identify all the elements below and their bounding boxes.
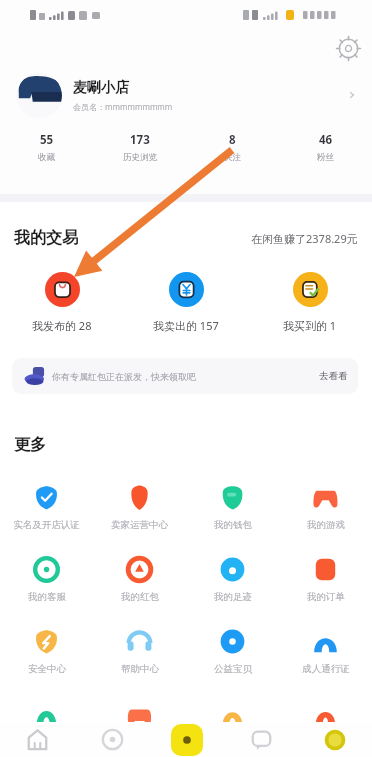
- button[interactable]: 我的评价: [186, 700, 279, 747]
- button[interactable]: 我的卡券: [93, 700, 186, 747]
- staticText: 8: [229, 132, 236, 148]
- staticText: 去看看: [319, 370, 348, 382]
- button[interactable]: 我的订单: [279, 556, 372, 603]
- button[interactable]: 我的红包: [93, 556, 186, 603]
- button[interactable]: 安全中心: [0, 628, 93, 675]
- button[interactable]: 成人通行证: [279, 628, 372, 675]
- button[interactable]: Fish: [75, 722, 150, 757]
- staticText: 历史浏览: [123, 152, 157, 163]
- staticText: 我的客服: [307, 735, 345, 747]
- staticText: 实名及开店认证: [13, 519, 80, 531]
- button[interactable]: 帮助中心: [93, 628, 186, 675]
- staticText: 我的交易: [14, 228, 78, 248]
- staticText: 公益宝贝: [214, 663, 252, 675]
- staticText: 麦唰小店: [73, 79, 129, 97]
- staticText: 我的地址: [28, 735, 66, 747]
- staticText: 我的订单: [307, 591, 345, 603]
- button[interactable]: Messages: [224, 722, 298, 757]
- staticText: 在闲鱼赚了2378.29元: [251, 231, 358, 246]
- staticText: 收藏: [38, 152, 55, 163]
- staticText: 会员名：mmmmmmmmm: [73, 101, 173, 112]
- button[interactable]: 你有专属红包正在派发，快来领取吧: [12, 358, 358, 394]
- button[interactable]: 我的客服: [279, 700, 372, 747]
- staticText: 安全中心: [28, 663, 66, 675]
- staticText: 我买到的 1: [283, 318, 337, 333]
- button[interactable]: 实名及开店认证: [0, 484, 93, 531]
- button[interactable]: 我的地址: [0, 700, 93, 747]
- staticText: 我的客服: [28, 591, 66, 603]
- staticText: 我的游戏: [307, 519, 345, 531]
- staticText: 你有专属红包正在派发，快来领取吧: [52, 371, 196, 382]
- button[interactable]: 173: [93, 122, 186, 172]
- staticText: 我的红包: [121, 591, 159, 603]
- button[interactable]: 麦唰小店: [17, 68, 358, 122]
- staticText: 成人通行证: [302, 663, 350, 675]
- staticText: 我卖出的 157: [153, 318, 219, 333]
- staticText: 关注: [224, 152, 241, 163]
- staticText: 我发布的 28: [32, 318, 92, 333]
- button[interactable]: 55: [0, 122, 93, 172]
- staticText: 173: [130, 132, 150, 148]
- button[interactable]: 我的足迹: [186, 556, 279, 603]
- button[interactable]: 8: [186, 122, 279, 172]
- staticText: 46: [319, 132, 333, 148]
- staticText: 帮助中心: [121, 663, 159, 675]
- staticText: 粉丝: [317, 152, 334, 163]
- button[interactable]: 我发布的 28: [0, 272, 124, 333]
- button[interactable]: Settings: [337, 37, 360, 60]
- button[interactable]: Profile: [324, 729, 346, 751]
- button[interactable]: 卖家运营中心: [93, 484, 186, 531]
- button[interactable]: 我的游戏: [279, 484, 372, 531]
- button[interactable]: 我买到的 1: [248, 272, 372, 333]
- button[interactable]: 我的客服: [0, 556, 93, 603]
- button[interactable]: 我的钱包: [186, 484, 279, 531]
- button[interactable]: Publish: [171, 724, 203, 756]
- staticText: 卖家运营中心: [111, 519, 168, 531]
- button[interactable]: 我卖出的 157: [124, 272, 248, 333]
- staticText: 我的足迹: [214, 591, 252, 603]
- button[interactable]: 46: [279, 122, 372, 172]
- button[interactable]: 公益宝贝: [186, 628, 279, 675]
- staticText: 55: [40, 132, 54, 148]
- staticText: 更多: [14, 435, 46, 455]
- button[interactable]: Home: [0, 722, 75, 757]
- staticText: 我的卡券: [121, 735, 159, 747]
- staticText: 我的钱包: [214, 519, 252, 531]
